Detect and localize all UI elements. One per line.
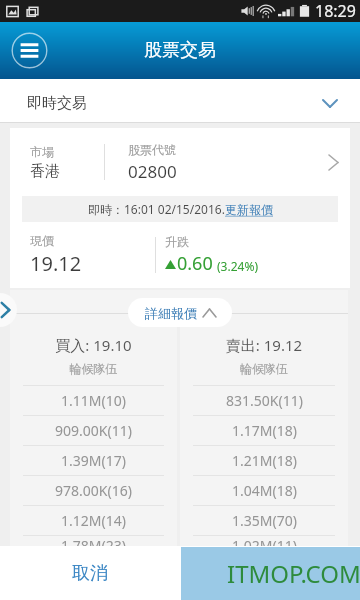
- staticText: 1.21M(18): [232, 451, 297, 470]
- staticText: 市場: [30, 144, 54, 159]
- staticText: 詳細報價: [145, 305, 197, 321]
- button[interactable]: 1.17M(18): [180, 416, 348, 445]
- staticText: 19.12: [30, 250, 82, 277]
- staticText: 1.02M(11): [232, 536, 297, 546]
- staticText: 1.78M(23): [61, 536, 126, 546]
- button[interactable]: 1.78M(23): [10, 536, 177, 546]
- staticText: ITMOP.COM: [227, 557, 360, 590]
- button[interactable]: 978.00K(16): [10, 476, 177, 505]
- staticText: 輪候隊伍: [10, 361, 177, 376]
- staticText: 1.39M(17): [61, 451, 126, 470]
- staticText: 升跌: [165, 234, 189, 249]
- button[interactable]: 詳細報價: [128, 298, 232, 327]
- staticText: 更新報價: [225, 202, 273, 217]
- button[interactable]: 909.00K(11): [10, 416, 177, 445]
- button[interactable]: 1.04M(18): [180, 476, 348, 505]
- staticText: 取消: [72, 562, 108, 585]
- staticText: 現價: [30, 233, 54, 248]
- button[interactable]: 1.21M(18): [180, 446, 348, 475]
- staticText: 賣出: 19.12: [180, 335, 348, 355]
- staticText: 909.00K(11): [55, 421, 132, 440]
- staticText: 1.17M(18): [232, 421, 297, 440]
- button[interactable]: 1.12M(14): [10, 506, 177, 535]
- button[interactable]: 取消: [0, 546, 180, 600]
- button[interactable]: 確認: [180, 546, 360, 600]
- staticText: 1.12M(14): [61, 511, 126, 530]
- staticText: 輪候隊伍: [180, 361, 348, 376]
- staticText: 1.11M(10): [61, 391, 126, 410]
- staticText: 1.04M(18): [232, 481, 297, 500]
- button[interactable]: 1.39M(17): [10, 446, 177, 475]
- button[interactable]: 1.35M(70): [180, 506, 348, 535]
- staticText: 股票代號: [128, 142, 176, 157]
- button[interactable]: Menu: [11, 32, 48, 69]
- staticText: 831.50K(11): [226, 391, 303, 410]
- button[interactable]: 1.11M(10): [10, 386, 177, 415]
- staticText: (3.24%): [217, 258, 258, 274]
- staticText: 即時交易: [27, 94, 87, 113]
- staticText: 買入: 19.10: [10, 335, 177, 355]
- staticText: 確認: [252, 562, 288, 585]
- button[interactable]: 即時交易: [0, 79, 360, 123]
- staticText: 978.00K(16): [55, 481, 132, 500]
- staticText: 0.60: [177, 251, 213, 276]
- staticText: 02800: [128, 160, 177, 183]
- staticText: 即時：16:01 02/15/2016.: [88, 201, 225, 217]
- staticText: 18:29: [315, 0, 356, 22]
- button[interactable]: 831.50K(11): [180, 386, 348, 415]
- staticText: 股票交易: [144, 39, 216, 62]
- button[interactable]: 1.02M(11): [180, 536, 348, 546]
- button[interactable]: 市場: [10, 128, 350, 196]
- staticText: 1.35M(70): [232, 511, 297, 530]
- button[interactable]: 更新報價: [225, 202, 273, 217]
- staticText: 香港: [30, 162, 60, 181]
- button[interactable]: Expand panel: [0, 293, 17, 327]
